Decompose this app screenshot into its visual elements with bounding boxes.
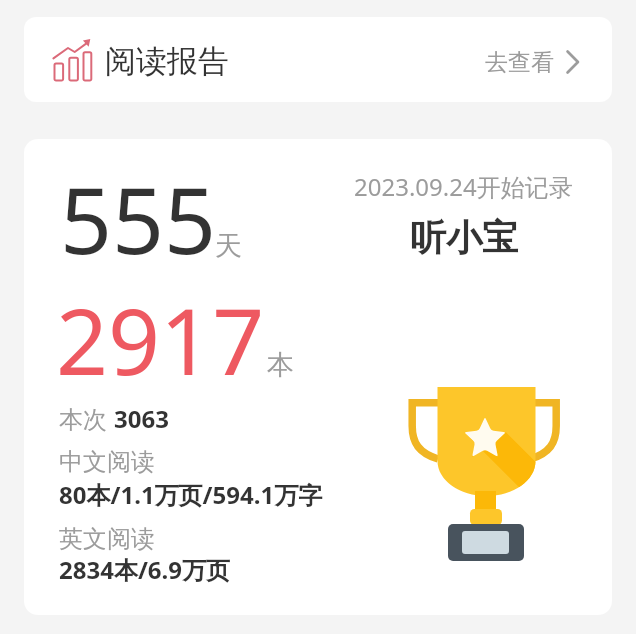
staticText: 本	[267, 348, 294, 382]
other: Go to report	[566, 50, 579, 74]
staticText: 天	[215, 229, 242, 263]
staticText: 2023.09.24开始记录	[354, 170, 573, 203]
staticText: 3063	[114, 402, 169, 435]
staticText: 英文阅读	[59, 524, 155, 554]
other: Reading report chart	[53, 40, 93, 82]
staticText: 阅读报告	[105, 42, 229, 81]
staticText: 80本/1.1万页/594.1万字	[59, 478, 323, 511]
staticText: 555	[60, 157, 217, 281]
button[interactable]: Reading report chart	[24, 17, 612, 102]
staticText: 中文阅读	[59, 447, 155, 477]
staticText: 2917	[56, 278, 265, 402]
staticText: 听小宝	[410, 215, 518, 260]
staticText: 去查看	[485, 48, 554, 77]
staticText: 本次	[59, 402, 114, 435]
staticText: 2834本/6.9万页	[59, 553, 231, 586]
button[interactable]: 去查看	[485, 45, 579, 79]
